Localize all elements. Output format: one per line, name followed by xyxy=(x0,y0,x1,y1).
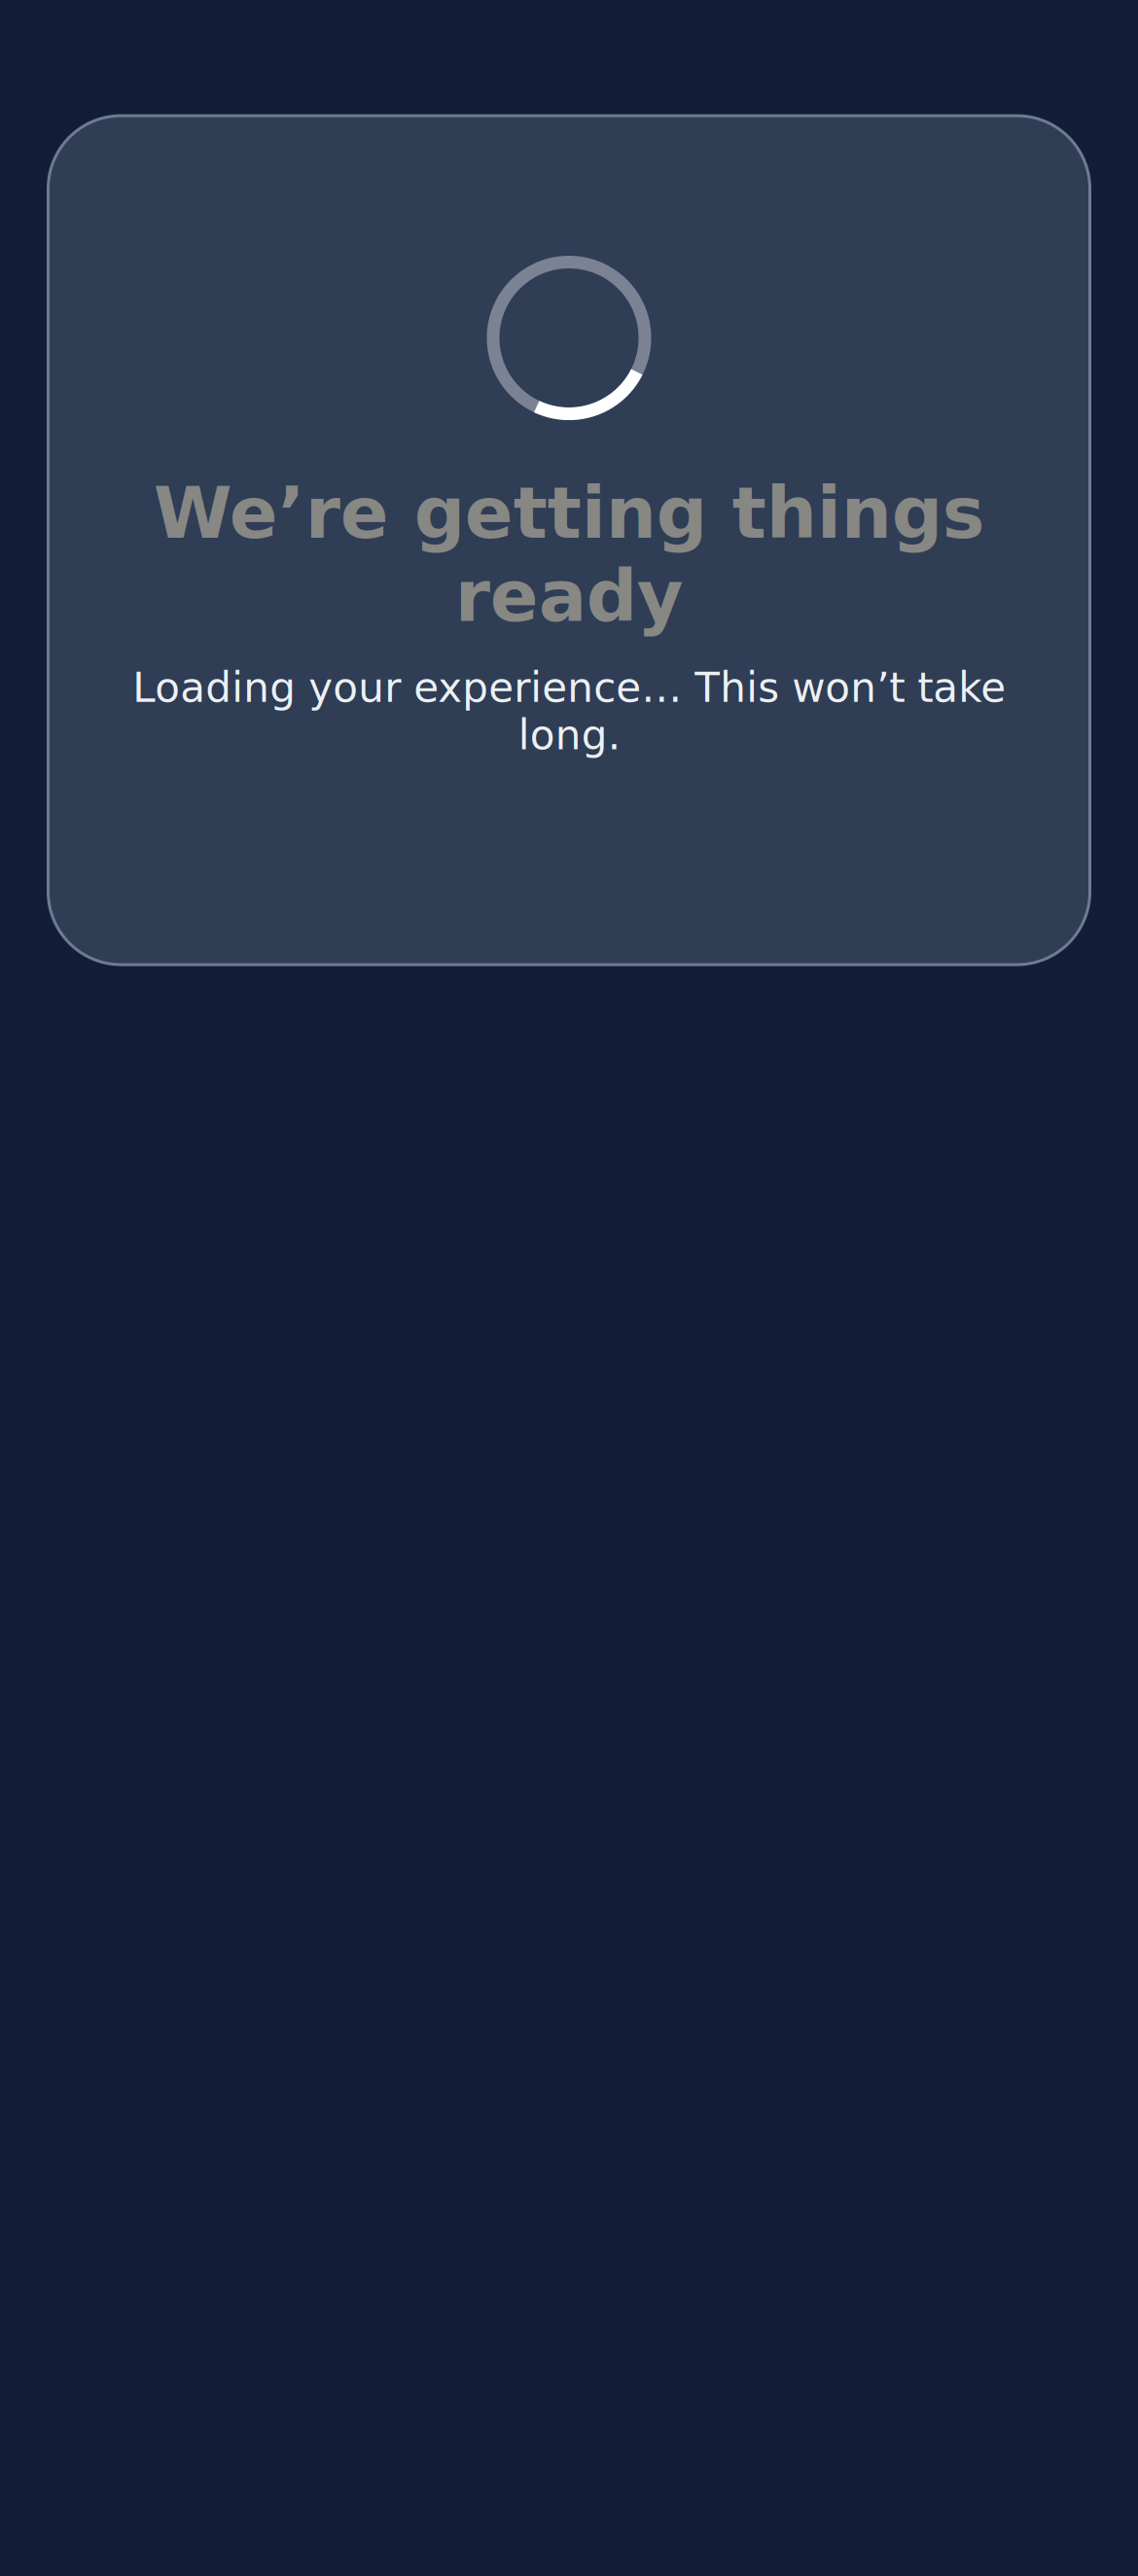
staticText: We’re getting things ready xyxy=(153,472,985,638)
staticText: Loading your experience… This won’t take… xyxy=(132,664,1006,759)
